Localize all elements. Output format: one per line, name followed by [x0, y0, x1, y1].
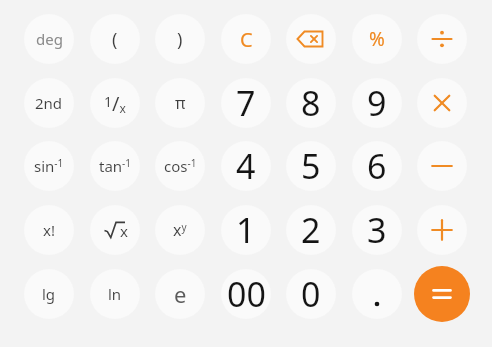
button[interactable]: 1 — [221, 205, 271, 255]
button[interactable]: Backspace — [286, 14, 336, 64]
button[interactable]: C — [221, 14, 271, 64]
button[interactable]: 4 — [221, 141, 271, 191]
button[interactable]: Multiply — [417, 78, 467, 128]
button[interactable]: Divide — [417, 14, 467, 64]
staticText: 6 — [367, 143, 387, 189]
staticText: 0 — [301, 271, 321, 317]
staticText: C — [240, 26, 253, 53]
button[interactable]: 2nd — [24, 78, 74, 128]
staticText: 2 — [301, 207, 321, 253]
button[interactable]: lg — [24, 269, 74, 319]
staticText: 00 — [227, 271, 266, 317]
button[interactable]: x! — [24, 205, 74, 255]
button[interactable]: 7 — [221, 78, 271, 128]
button[interactable]: 8 — [286, 78, 336, 128]
button[interactable]: deg — [24, 14, 74, 64]
staticText: xy — [173, 219, 187, 241]
button[interactable]: 3 — [352, 205, 402, 255]
button[interactable]: ) — [155, 14, 205, 64]
button[interactable]: 0 — [286, 269, 336, 319]
staticText: deg — [36, 29, 63, 49]
button[interactable]: xy — [155, 205, 205, 255]
button[interactable]: tan-1 — [90, 141, 140, 191]
button[interactable]: 5 — [286, 141, 336, 191]
staticText: 7 — [236, 80, 256, 126]
button[interactable]: Plus — [417, 205, 467, 255]
button[interactable]: 2 — [286, 205, 336, 255]
staticText: 3 — [367, 207, 387, 253]
button[interactable] — [352, 269, 402, 319]
staticText: ) — [177, 27, 183, 52]
staticText: cos-1 — [164, 156, 197, 176]
staticText: ( — [112, 27, 118, 52]
button[interactable]: Minus — [417, 141, 467, 191]
button[interactable]: ( — [90, 14, 140, 64]
staticText: e — [174, 279, 187, 309]
staticText: 9 — [367, 80, 387, 126]
staticText: x — [120, 221, 128, 241]
staticText: 1 — [236, 207, 256, 253]
button[interactable]: 1/x — [90, 78, 140, 128]
button[interactable]: 6 — [352, 141, 402, 191]
staticText: sin-1 — [34, 156, 64, 176]
button[interactable]: 00 — [221, 269, 271, 319]
staticText: ln — [108, 284, 122, 304]
button[interactable]: sin-1 — [24, 141, 74, 191]
staticText: 1/x — [104, 90, 126, 117]
button[interactable]: cos-1 — [155, 141, 205, 191]
staticText: 4 — [236, 143, 256, 189]
button[interactable]: % — [352, 14, 402, 64]
button[interactable]: 9 — [352, 78, 402, 128]
button[interactable]: ln — [90, 269, 140, 319]
staticText: tan-1 — [99, 156, 132, 176]
button[interactable]: x — [90, 205, 140, 255]
staticText: 8 — [301, 80, 321, 126]
button[interactable]: π — [155, 78, 205, 128]
button[interactable]: Equals — [414, 266, 470, 322]
staticText: % — [369, 26, 385, 52]
button[interactable]: e — [155, 269, 205, 319]
staticText: x! — [43, 220, 55, 240]
staticText: 5 — [301, 143, 321, 189]
staticText: lg — [42, 284, 56, 304]
staticText: π — [175, 92, 186, 114]
staticText: 2nd — [35, 93, 63, 113]
